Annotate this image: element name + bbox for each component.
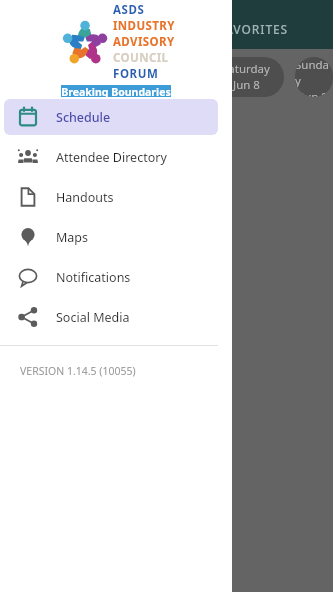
staticText: FORUM	[113, 66, 159, 82]
staticText: INDUSTRY	[113, 18, 175, 34]
other: Maps	[18, 227, 38, 247]
staticText: Jun 9	[301, 89, 328, 97]
other: Schedule	[18, 107, 38, 127]
staticText: Schedule	[56, 109, 111, 126]
staticText: Handouts	[56, 189, 114, 206]
staticText: ADVISORY	[113, 34, 175, 50]
staticText: Sunday	[295, 57, 333, 89]
button[interactable]: Maps	[4, 219, 218, 255]
staticText: Jun 8	[233, 77, 260, 93]
other: Attendee Directory	[18, 147, 38, 167]
button[interactable]: Attendee Directory	[4, 139, 218, 175]
staticText: Social Media	[56, 309, 130, 326]
button[interactable]: Notifications	[4, 259, 218, 295]
staticText: Maps	[56, 229, 89, 246]
button[interactable]: Social Media	[4, 299, 218, 335]
staticText: Saturday	[222, 61, 270, 77]
staticText: FAVORITES	[218, 21, 289, 37]
button[interactable]: Handouts	[4, 179, 218, 215]
button[interactable]: Saturday	[208, 57, 284, 97]
staticText: Breaking Boundaries	[61, 85, 171, 97]
other: Social Media	[18, 307, 38, 327]
staticText: Attendee Directory	[56, 149, 167, 166]
other: Notifications	[18, 267, 38, 287]
staticText: VERSION 1.14.5 (10055)	[20, 364, 136, 378]
button[interactable]: Schedule	[4, 99, 218, 135]
staticText: ASDS	[113, 2, 145, 18]
staticText: COUNCIL	[113, 50, 169, 66]
staticText: Notifications	[56, 269, 131, 286]
other: Handouts	[18, 187, 38, 207]
button[interactable]: Sunday	[295, 57, 333, 97]
